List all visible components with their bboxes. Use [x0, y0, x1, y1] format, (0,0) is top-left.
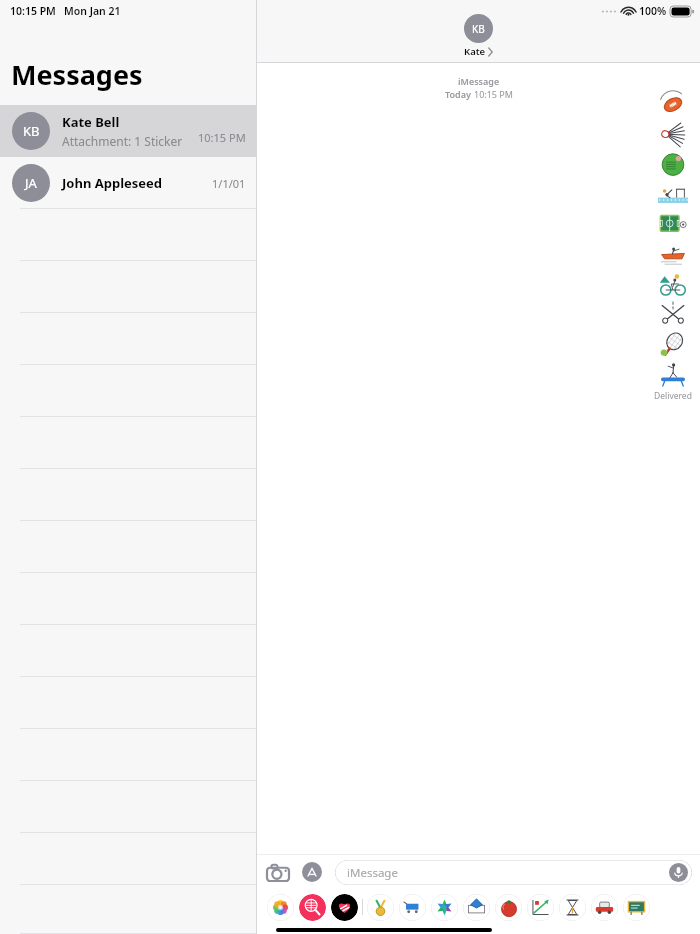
button[interactable]: Cart sticker — [399, 894, 426, 921]
button[interactable]: Chart sticker — [527, 894, 554, 921]
staticText: John Appleseed — [62, 174, 163, 192]
staticText: Delivered — [654, 390, 692, 402]
staticText: Kate — [464, 45, 486, 58]
button[interactable]: Board sticker — [623, 894, 650, 921]
button[interactable]: Images — [299, 894, 326, 921]
button[interactable]: Camera — [265, 859, 291, 885]
staticText: Messages — [11, 56, 143, 93]
button[interactable]: App Store — [299, 859, 325, 885]
button[interactable]: Hourglass sticker — [559, 894, 586, 921]
button[interactable]: Envelope sticker — [463, 894, 490, 921]
staticText: 10:15 PM — [10, 4, 56, 18]
staticText: 10:15 PM — [474, 88, 513, 100]
staticText: 10:15 PM — [198, 130, 246, 145]
button[interactable]: Digital Touch — [331, 894, 358, 921]
button[interactable]: KB — [0, 105, 256, 157]
staticText: iMessage — [458, 75, 500, 87]
staticText: 100% — [639, 4, 667, 18]
staticText: JA — [25, 174, 37, 192]
staticText: Kate Bell — [62, 113, 120, 131]
button[interactable]: Tomato sticker — [495, 894, 522, 921]
staticText: 1/1/01 — [212, 176, 246, 191]
staticText: Attachment: 1 Sticker — [62, 133, 183, 149]
staticText: KB — [472, 22, 485, 36]
button[interactable]: iMessage — [335, 860, 692, 885]
staticText: iMessage — [347, 865, 398, 881]
staticText: Mon Jan 21 — [64, 4, 121, 18]
button[interactable]: JA — [0, 157, 256, 209]
button[interactable]: Photos — [267, 894, 294, 921]
other: Dictate — [669, 863, 688, 882]
button[interactable]: Car sticker — [591, 894, 618, 921]
button[interactable]: Medal sticker — [367, 894, 394, 921]
staticText: KB — [23, 122, 40, 140]
staticText: Today — [445, 88, 474, 100]
button[interactable]: Star sticker — [431, 894, 458, 921]
button[interactable]: KB — [464, 14, 493, 58]
